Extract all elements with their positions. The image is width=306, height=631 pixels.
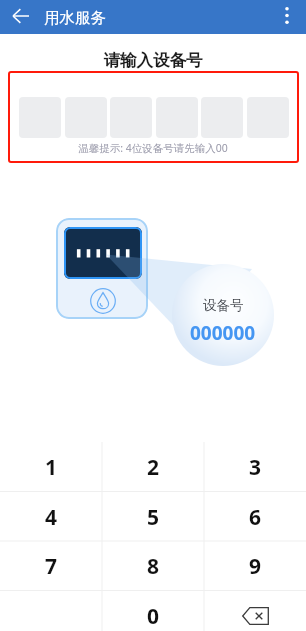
staticText: 7 xyxy=(45,552,58,581)
staticText: 3 xyxy=(249,453,262,482)
button[interactable]: Back xyxy=(5,0,36,31)
staticText: 9 xyxy=(249,552,262,581)
button[interactable]: 6 xyxy=(204,492,306,542)
button[interactable]: 3 xyxy=(204,442,306,492)
staticText: 0 xyxy=(147,602,160,631)
staticText: 8 xyxy=(147,552,160,581)
button[interactable]: More options xyxy=(271,0,302,31)
staticText: 设备号 xyxy=(203,297,244,314)
staticText: 请输入设备号 xyxy=(0,50,306,71)
button[interactable]: 9 xyxy=(204,541,306,591)
staticText: 000000 xyxy=(190,320,256,346)
staticText: 用水服务 xyxy=(44,8,106,28)
button[interactable]: 7 xyxy=(0,541,102,591)
staticText: 2 xyxy=(147,453,160,482)
button[interactable]: 8 xyxy=(102,541,204,591)
button[interactable]: 5 xyxy=(102,492,204,542)
button[interactable]: 0 xyxy=(102,591,204,631)
button[interactable]: 2 xyxy=(102,442,204,492)
button[interactable]: Backspace xyxy=(204,591,306,631)
staticText: 1 xyxy=(45,453,58,482)
staticText: 4 xyxy=(45,503,58,532)
staticText: 6 xyxy=(249,503,262,532)
button[interactable]: 1 xyxy=(0,442,102,492)
button[interactable]: 4 xyxy=(0,492,102,542)
staticText: 5 xyxy=(147,503,160,532)
staticText: 温馨提示: 4位设备号请先输入00 xyxy=(0,141,306,155)
